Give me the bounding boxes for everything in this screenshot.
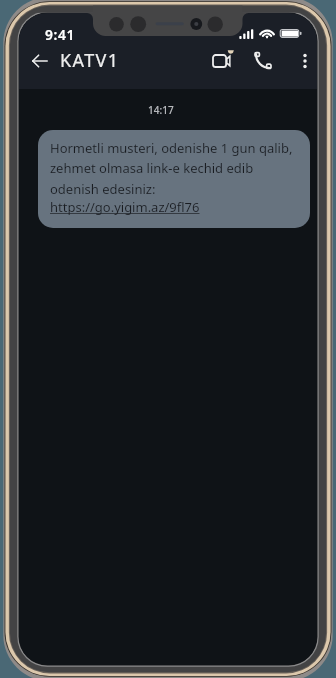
staticText: 14:17 xyxy=(148,103,174,117)
staticText: KATV1 xyxy=(60,48,120,73)
staticText: Hormetli musteri, odenishe 1 gun qalib, … xyxy=(50,139,293,198)
button[interactable]: Video call xyxy=(207,46,237,76)
button[interactable]: Call xyxy=(248,46,278,76)
staticText: https://go.yigim.az/9fl76 xyxy=(50,198,200,216)
button[interactable]: Back xyxy=(25,46,55,76)
button[interactable]: Hormetli musteri, odenishe 1 gun qalib, … xyxy=(38,130,310,228)
staticText: 9:41 xyxy=(45,25,75,44)
button[interactable]: More options xyxy=(290,46,317,76)
